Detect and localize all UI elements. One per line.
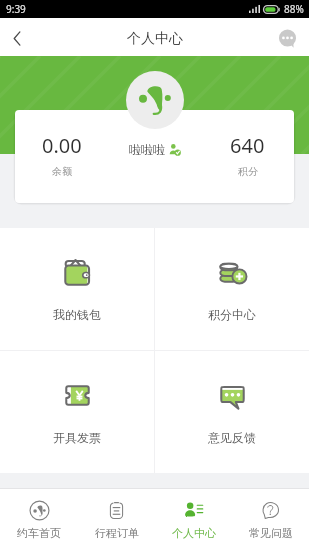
staticText: 9:39 — [6, 2, 26, 16]
button[interactable]: 个人中心 — [155, 489, 232, 550]
button[interactable]: 意见反馈 — [155, 351, 309, 473]
button[interactable]: 约车首页 — [0, 489, 78, 550]
staticText: 约车首页 — [17, 526, 61, 540]
staticText: 我的钱包 — [53, 307, 101, 322]
staticText: 积分中心 — [208, 307, 256, 322]
button[interactable]: 行程订单 — [78, 489, 155, 550]
button[interactable]: 我的钱包 — [0, 228, 154, 350]
staticText: 个人中心 — [172, 526, 216, 540]
staticText: 常见问题 — [249, 526, 293, 540]
button[interactable]: More options — [275, 25, 299, 49]
button[interactable]: 开具发票 — [0, 351, 154, 473]
staticText: 640 — [230, 132, 265, 159]
staticText: 余额 — [52, 165, 72, 178]
button[interactable]: Back — [1, 21, 33, 53]
staticText: 积分 — [238, 165, 258, 178]
staticText: 个人中心 — [127, 30, 183, 48]
button[interactable]: Avatar — [126, 71, 184, 129]
staticText: 88% — [284, 2, 304, 16]
staticText: 0.00 — [42, 132, 82, 159]
staticText: 开具发票 — [53, 430, 101, 445]
button[interactable]: 积分中心 — [155, 228, 309, 350]
staticText: 啦啦啦 — [129, 142, 165, 157]
staticText: 意见反馈 — [208, 430, 256, 445]
staticText: 行程订单 — [95, 526, 139, 540]
button[interactable]: 常见问题 — [232, 489, 309, 550]
